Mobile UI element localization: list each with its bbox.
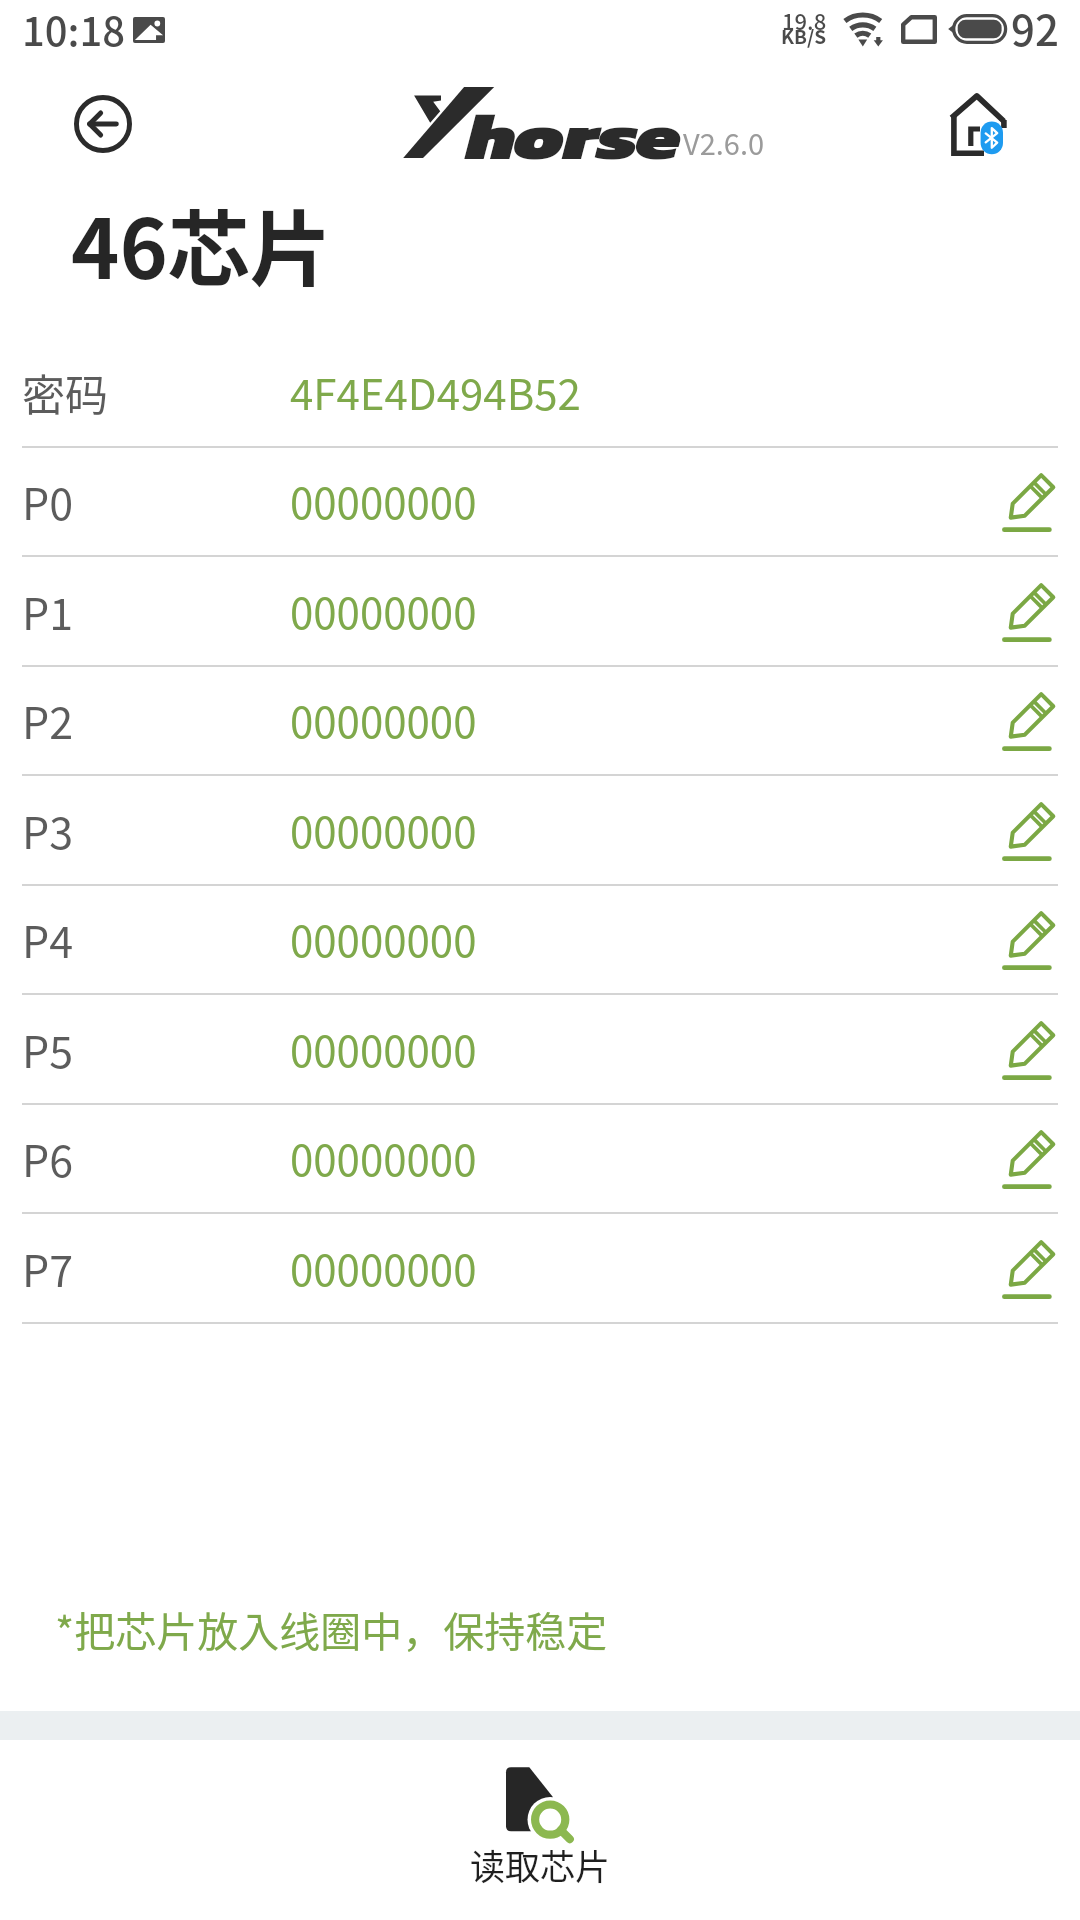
staticText: 10:18 bbox=[22, 0, 126, 58]
staticText: P7 bbox=[22, 1237, 74, 1299]
button[interactable]: Edit bbox=[999, 1021, 1059, 1081]
button[interactable]: Edit bbox=[999, 583, 1059, 643]
button[interactable]: Edit bbox=[999, 802, 1059, 862]
button[interactable]: P3 bbox=[0, 777, 1080, 886]
staticText: 00000000 bbox=[290, 1127, 477, 1188]
button[interactable]: P5 bbox=[0, 996, 1080, 1105]
button[interactable]: Edit bbox=[999, 1130, 1059, 1190]
staticText: P3 bbox=[22, 799, 74, 861]
staticText: 00000000 bbox=[290, 470, 477, 531]
button[interactable]: P2 bbox=[0, 667, 1080, 776]
button[interactable]: P1 bbox=[0, 558, 1080, 667]
button[interactable]: Home Bluetooth bbox=[944, 90, 1014, 162]
staticText: P2 bbox=[22, 689, 74, 751]
staticText: 读取芯片 bbox=[470, 1839, 611, 1890]
button[interactable]: Edit bbox=[999, 911, 1059, 971]
staticText: 00000000 bbox=[290, 1237, 477, 1298]
staticText: 19.8 bbox=[782, 4, 827, 36]
button[interactable]: 密码 bbox=[0, 339, 1080, 448]
staticText: horse bbox=[466, 86, 681, 185]
button[interactable]: P0 bbox=[0, 448, 1080, 557]
button[interactable]: P4 bbox=[0, 886, 1080, 995]
staticText: 00000000 bbox=[290, 1018, 477, 1079]
staticText: 密码 bbox=[22, 361, 108, 423]
staticText: P6 bbox=[22, 1127, 74, 1189]
staticText: 4F4E4D494B52 bbox=[290, 361, 581, 422]
button[interactable]: Edit bbox=[999, 473, 1059, 533]
button[interactable]: Edit bbox=[999, 692, 1059, 752]
staticText: 00000000 bbox=[290, 908, 477, 969]
button[interactable]: P6 bbox=[0, 1105, 1080, 1214]
staticText: 00000000 bbox=[290, 799, 477, 860]
staticText: 46芯片 bbox=[71, 184, 332, 303]
staticText: P5 bbox=[22, 1018, 74, 1080]
staticText: 00000000 bbox=[290, 689, 477, 750]
staticText: KB/S bbox=[781, 22, 827, 50]
button[interactable]: P7 bbox=[0, 1215, 1080, 1324]
button[interactable]: 读取芯片 bbox=[0, 1740, 1080, 1920]
staticText: 00000000 bbox=[290, 580, 477, 641]
staticText: P4 bbox=[22, 908, 74, 970]
button[interactable]: Back bbox=[74, 95, 132, 153]
staticText: P0 bbox=[22, 470, 74, 532]
staticText: 92 bbox=[1011, 0, 1059, 58]
button[interactable]: Edit bbox=[999, 1240, 1059, 1300]
staticText: *把芯片放入线圈中，保持稳定 bbox=[55, 1599, 608, 1658]
staticText: P1 bbox=[22, 580, 74, 642]
staticText: V2.6.0 bbox=[683, 121, 765, 163]
